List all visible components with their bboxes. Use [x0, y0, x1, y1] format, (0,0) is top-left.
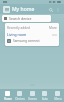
- button[interactable]: Scenes: [27, 89, 38, 102]
- button[interactable]: Search: [47, 6, 54, 13]
- button[interactable]: More options: [54, 6, 61, 13]
- button[interactable]: Menu: [3, 6, 10, 13]
- staticText: Search device: [9, 16, 32, 21]
- button[interactable]: Menu: [52, 89, 63, 102]
- button[interactable]: Samsung connect: [5, 38, 59, 44]
- staticText: Samsung connect: [13, 39, 40, 43]
- staticText: Living room: [7, 32, 27, 37]
- button[interactable]: Living room: [5, 31, 59, 38]
- button[interactable]: Auto: [39, 89, 50, 102]
- staticText: Devices: [15, 97, 25, 100]
- button[interactable]: Search device: [2, 15, 51, 22]
- staticText: My home: [12, 6, 35, 13]
- button[interactable]: Recently added: [5, 25, 59, 31]
- staticText: Home: [4, 97, 12, 100]
- staticText: More: [49, 26, 57, 30]
- staticText: Menu: [54, 97, 62, 100]
- staticText: Auto: [42, 97, 48, 100]
- staticText: Scenes: [28, 97, 37, 100]
- staticText: Recently added: [7, 26, 30, 30]
- button[interactable]: Home: [2, 89, 13, 102]
- button[interactable]: Devices: [14, 89, 25, 102]
